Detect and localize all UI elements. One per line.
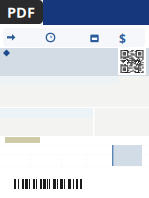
staticText: $ [119, 31, 126, 47]
button[interactable]: Price [119, 31, 126, 47]
button[interactable]: Forward [7, 33, 16, 42]
button[interactable]: PDF [0, 0, 43, 24]
staticText: PDF [7, 2, 35, 22]
button[interactable]: History [46, 33, 55, 42]
button[interactable]: Calendar [90, 32, 99, 42]
